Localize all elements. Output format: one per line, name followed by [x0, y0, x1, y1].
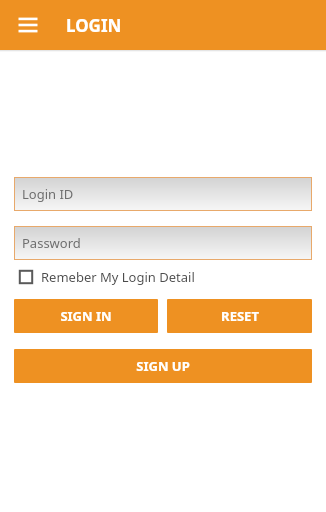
button[interactable]: SIGN IN: [14, 299, 158, 333]
button[interactable]: Open navigation menu: [14, 11, 42, 39]
staticText: SIGN IN: [60, 307, 112, 325]
button[interactable]: RESET: [167, 299, 312, 333]
button[interactable]: Login ID: [14, 177, 312, 211]
button[interactable]: Remeber My Login Detail: [19, 266, 195, 288]
staticText: Login ID: [22, 185, 74, 203]
staticText: Remeber My Login Detail: [41, 268, 195, 286]
button[interactable]: Password: [14, 226, 312, 260]
staticText: SIGN UP: [136, 357, 190, 375]
staticText: RESET: [221, 307, 259, 325]
button[interactable]: SIGN UP: [14, 349, 312, 383]
staticText: LOGIN: [66, 14, 122, 37]
staticText: Password: [22, 234, 81, 252]
